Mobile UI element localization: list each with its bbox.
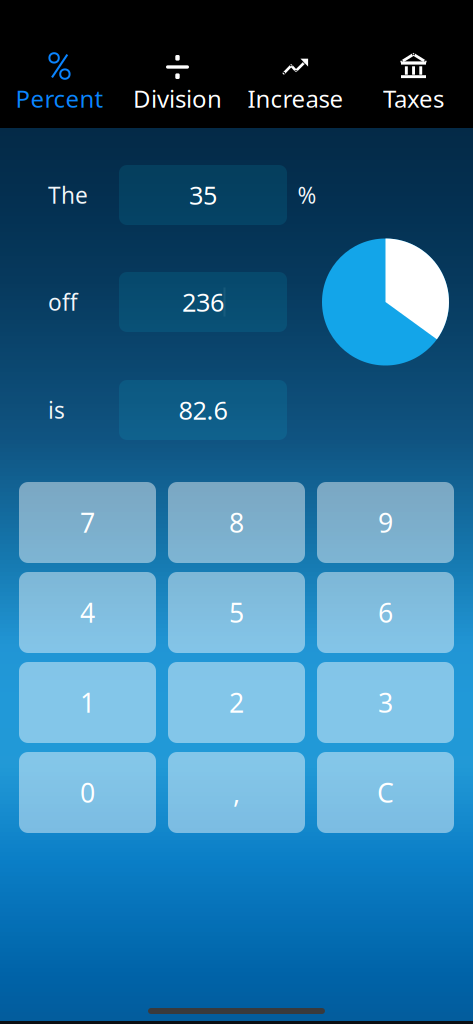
button[interactable]: 1: [19, 662, 156, 743]
button[interactable]: 4: [19, 572, 156, 653]
button[interactable]: 236: [119, 272, 287, 332]
button[interactable]: 8: [168, 482, 305, 563]
staticText: Percent: [15, 82, 103, 114]
staticText: 35: [189, 178, 217, 212]
staticText: 7: [80, 505, 95, 540]
button[interactable]: Division: [118, 0, 236, 128]
staticText: 8: [229, 505, 244, 540]
staticText: 5: [229, 595, 244, 630]
staticText: 1: [80, 685, 95, 720]
button[interactable]: Taxes: [354, 0, 472, 128]
staticText: ,: [233, 775, 240, 810]
button[interactable]: 3: [317, 662, 454, 743]
button[interactable]: 35: [119, 165, 287, 225]
staticText: 3: [378, 685, 393, 720]
button[interactable]: 5: [168, 572, 305, 653]
button[interactable]: Increase: [236, 0, 354, 128]
staticText: 6: [378, 595, 393, 630]
staticText: The: [48, 180, 88, 210]
button[interactable]: ,: [168, 752, 305, 833]
staticText: 82.6: [178, 393, 227, 427]
button[interactable]: 9: [317, 482, 454, 563]
staticText: Division: [133, 82, 222, 114]
staticText: is: [48, 395, 65, 425]
button[interactable]: 6: [317, 572, 454, 653]
button[interactable]: C: [317, 752, 454, 833]
staticText: Taxes: [383, 82, 444, 114]
staticText: %: [297, 180, 316, 210]
staticText: 0: [80, 775, 95, 810]
button[interactable]: 0: [19, 752, 156, 833]
staticText: 4: [80, 595, 95, 630]
staticText: 2: [229, 685, 244, 720]
staticText: C: [377, 775, 394, 810]
button[interactable]: 82.6: [119, 380, 287, 440]
staticText: 9: [378, 505, 393, 540]
staticText: 236: [182, 285, 224, 319]
button[interactable]: 7: [19, 482, 156, 563]
button[interactable]: 2: [168, 662, 305, 743]
button[interactable]: Percent: [0, 0, 118, 128]
staticText: off: [48, 287, 78, 317]
staticText: Increase: [247, 82, 343, 114]
